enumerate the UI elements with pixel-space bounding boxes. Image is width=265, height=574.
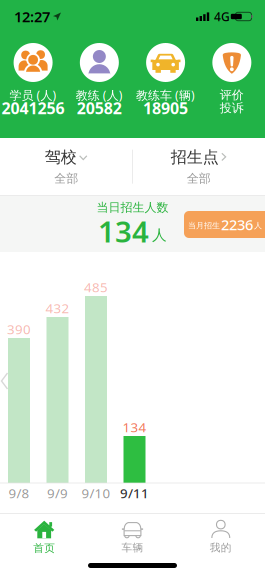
staticText: 9/8 [8, 484, 29, 502]
button[interactable]: 招生点 [133, 138, 265, 195]
staticText: 20582 [77, 97, 122, 119]
staticText: 教练车 (辆) [136, 87, 195, 103]
staticText: 全部 [187, 171, 211, 186]
button[interactable]: 我的 [177, 514, 265, 554]
button[interactable]: 教练车 (辆) [132, 27, 199, 138]
button[interactable]: 驾校 [0, 138, 132, 195]
staticText: 驾校 [45, 147, 77, 167]
staticText: 当月招生 [188, 221, 220, 230]
button[interactable]: 首页 [0, 514, 88, 555]
staticText: 人 [152, 226, 167, 244]
staticText: 投诉 [220, 101, 244, 115]
staticText: 车辆 [121, 541, 143, 554]
staticText: 当日招生人数 [96, 200, 168, 215]
staticText: 9/11 [120, 484, 149, 502]
button[interactable]: 车辆 [88, 514, 177, 554]
staticText: 人 [254, 221, 262, 230]
button[interactable]: 教练 (人) [66, 27, 132, 138]
staticText: 2041256 [2, 97, 65, 119]
staticText: 评价 [220, 88, 244, 102]
staticText: 教练 (人) [76, 87, 123, 103]
staticText: 134 [98, 211, 149, 250]
staticText: 390 [7, 320, 31, 338]
staticText: 432 [45, 299, 69, 317]
staticText: 9/10 [81, 484, 110, 502]
staticText: 全部 [54, 171, 78, 186]
staticText: 4G [214, 8, 230, 24]
staticText: 2236 [221, 215, 253, 234]
staticText: 18905 [143, 97, 188, 119]
staticText: 12:27 [14, 7, 50, 26]
button[interactable]: 评价 [199, 27, 265, 138]
staticText: 首页 [33, 542, 55, 555]
staticText: 134 [122, 418, 146, 436]
staticText: 485 [84, 278, 108, 296]
staticText: 我的 [210, 541, 232, 554]
staticText: 学员 (人) [10, 87, 57, 103]
button[interactable]: Previous chart [1, 373, 8, 389]
staticText: 招生点 [171, 147, 219, 167]
button[interactable]: 学员 (人) [0, 27, 66, 138]
button[interactable]: 当月招生 [184, 211, 265, 238]
staticText: 9/9 [47, 484, 68, 502]
